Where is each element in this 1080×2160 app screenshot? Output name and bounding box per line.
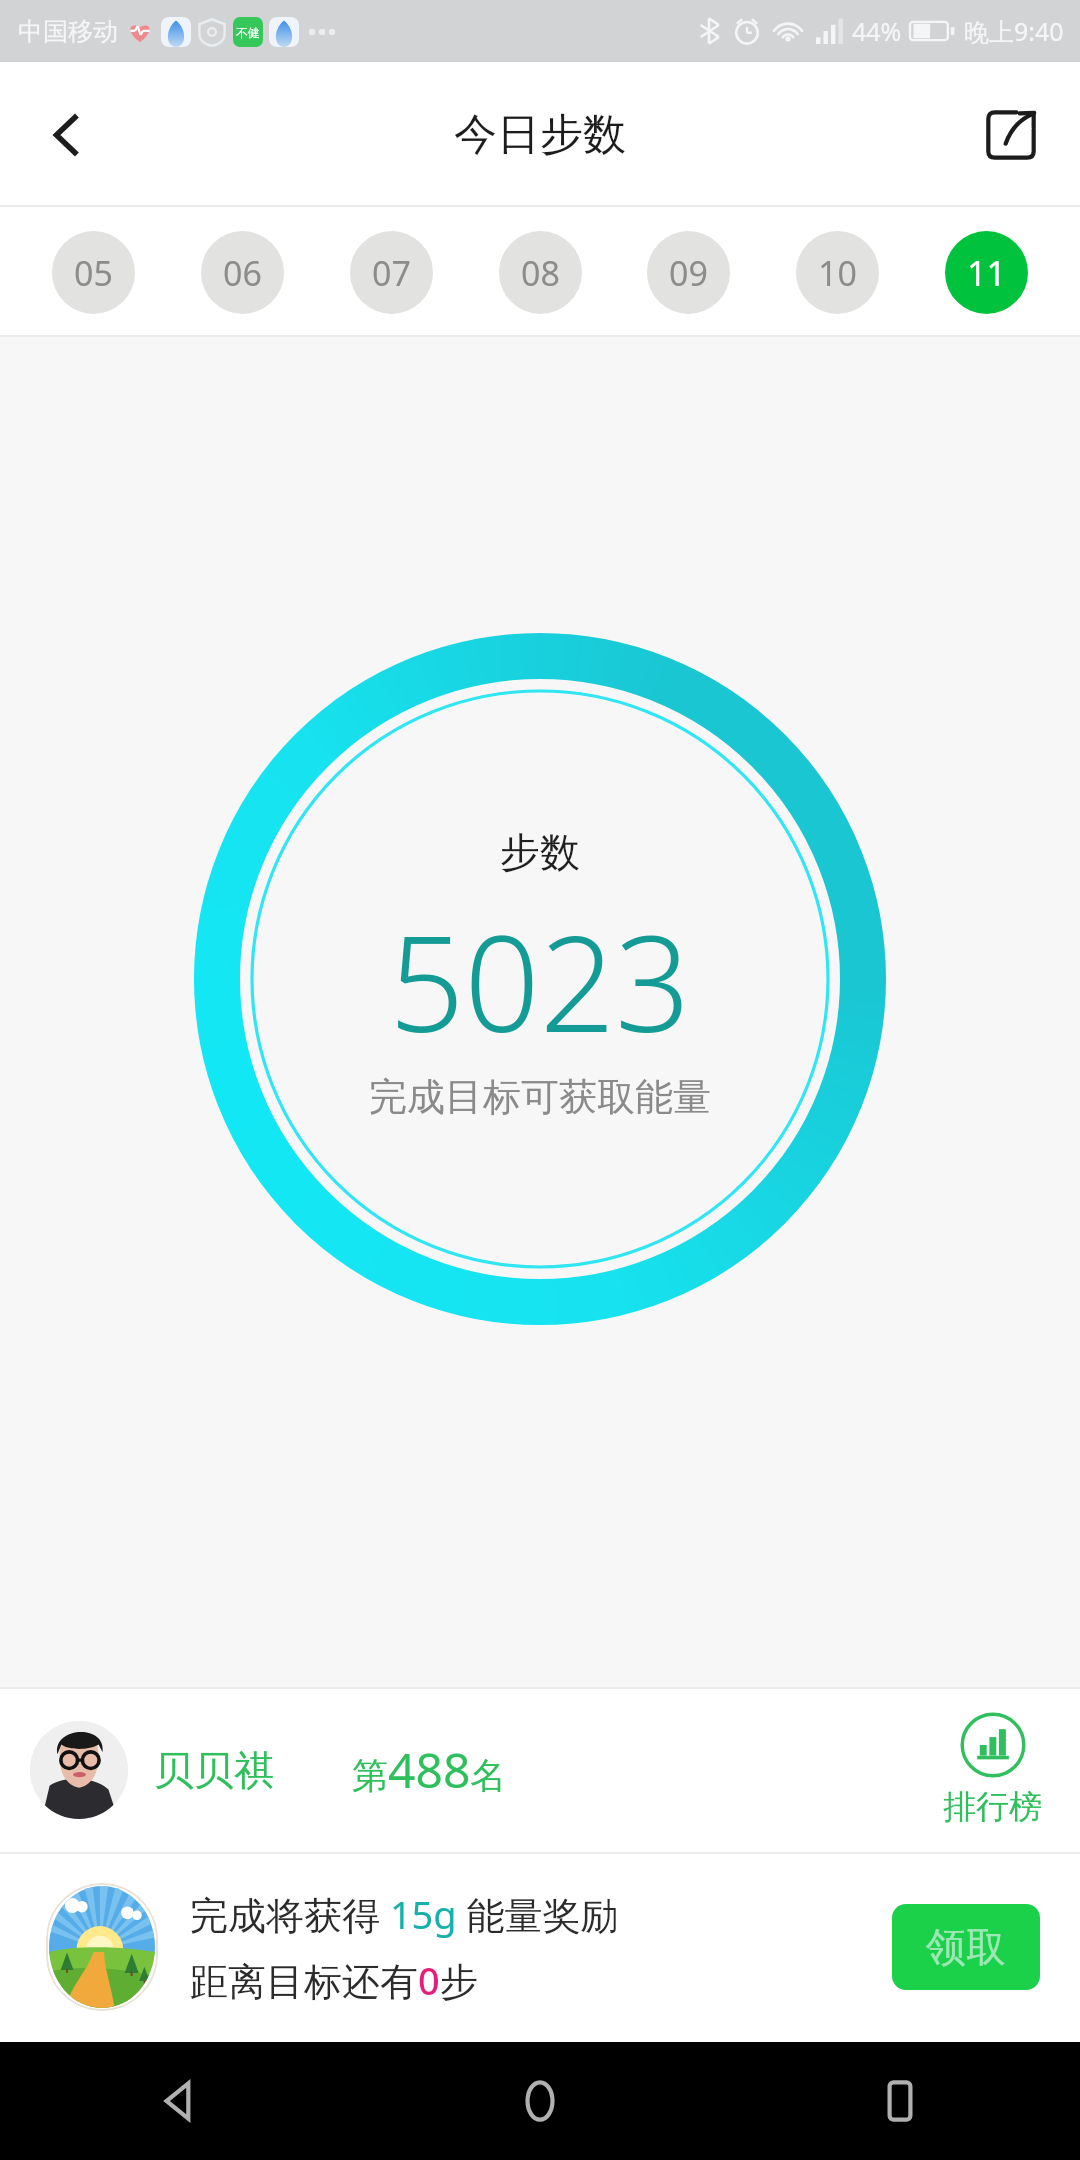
staticText: 44% — [852, 14, 902, 48]
button[interactable]: 返回 — [24, 92, 110, 178]
staticText: 10 — [818, 250, 857, 296]
staticText: 领取 — [926, 1922, 1006, 1972]
staticText: 06 — [223, 250, 262, 296]
button[interactable]: 10 — [796, 231, 879, 314]
button[interactable]: 06 — [201, 231, 284, 314]
staticText: 07 — [372, 250, 411, 296]
button[interactable]: 08 — [499, 231, 582, 314]
staticText: 今日步数 — [454, 108, 626, 162]
staticText: 11 — [967, 250, 1006, 296]
button[interactable]: 贝贝祺 — [30, 1721, 274, 1819]
staticText: 08 — [521, 250, 560, 296]
staticText: 中国移动 — [18, 16, 118, 47]
staticText: 完成将获得 15g 能量奖励 — [190, 1888, 619, 1940]
button[interactable]: 07 — [350, 231, 433, 314]
button[interactable]: 05 — [52, 231, 135, 314]
button[interactable]: 返回 — [0, 2042, 360, 2160]
button[interactable]: 领取 — [892, 1904, 1040, 1990]
staticText: 5023 — [389, 891, 691, 1071]
button[interactable]: 09 — [647, 231, 730, 314]
button[interactable]: 11 — [945, 231, 1028, 314]
staticText: 完成目标可获取能量 — [369, 1073, 711, 1121]
staticText: 09 — [669, 250, 708, 296]
staticText: 第488名 — [352, 1737, 507, 1802]
staticText: 排行榜 — [943, 1786, 1042, 1828]
staticText: 05 — [74, 250, 113, 296]
button[interactable]: 排行榜 — [935, 1712, 1050, 1828]
staticText: 贝贝祺 — [154, 1745, 274, 1795]
staticText: 距离目标还有0步 — [190, 1954, 478, 2006]
staticText: 晚上9:40 — [964, 14, 1064, 48]
staticText: 不健 — [236, 25, 260, 40]
button[interactable]: 主屏幕 — [360, 2042, 720, 2160]
button[interactable]: 最近任务 — [720, 2042, 1080, 2160]
staticText: 步数 — [500, 827, 580, 877]
button[interactable]: 分享 — [968, 92, 1054, 178]
